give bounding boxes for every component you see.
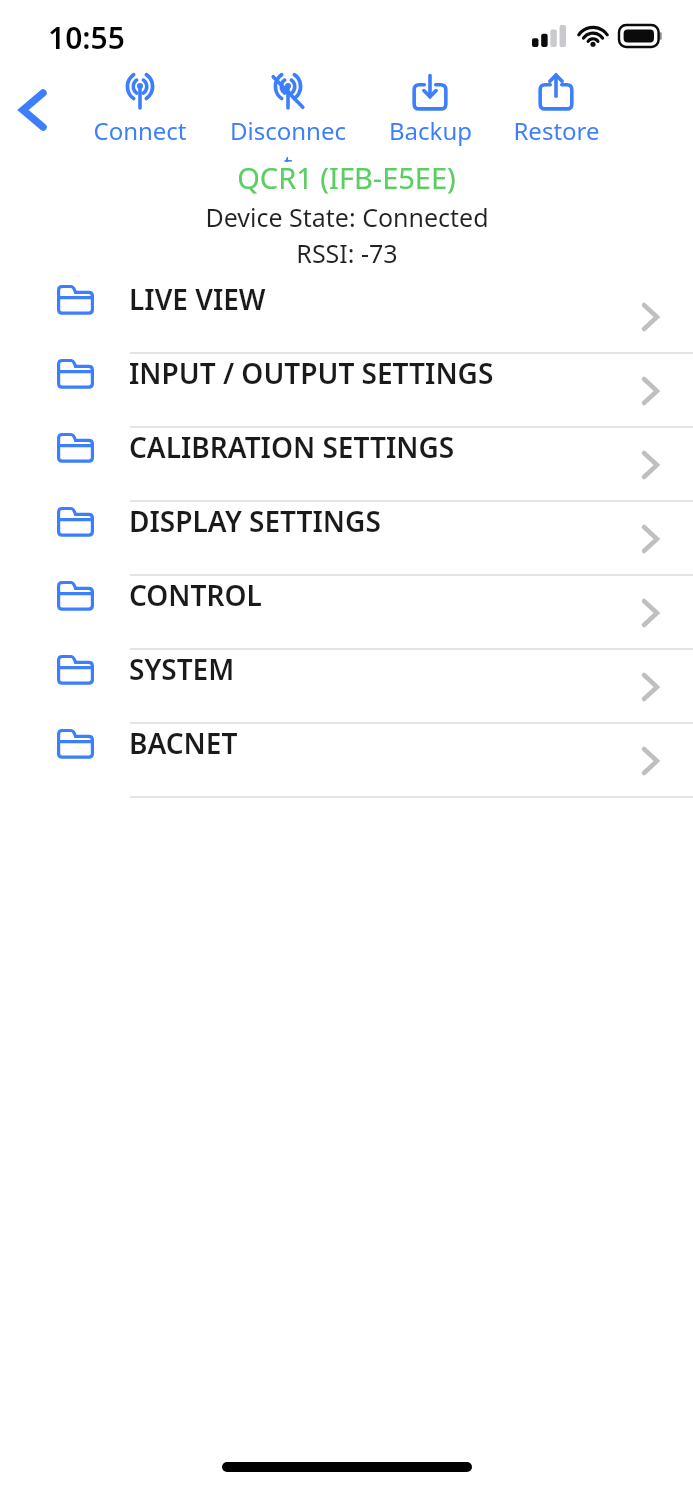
button[interactable]: INPUT / OUTPUT SETTINGS [0, 354, 693, 428]
button[interactable]: Backup [368, 74, 492, 147]
staticText: Connect [93, 114, 187, 147]
staticText: BACNET [129, 724, 238, 762]
staticText: SYSTEM [129, 650, 235, 688]
button[interactable]: Connect [78, 74, 202, 147]
staticText: DISPLAY SETTINGS [129, 502, 381, 540]
staticText: LIVE VIEW [129, 280, 266, 318]
staticText: Restore [513, 114, 600, 147]
button[interactable]: DISPLAY SETTINGS [0, 502, 693, 576]
button[interactable]: CALIBRATION SETTINGS [0, 428, 693, 502]
staticText: 10:55 [48, 17, 125, 58]
staticText: CONTROL [129, 576, 262, 614]
staticText: Disconnect [226, 114, 350, 162]
button[interactable]: CONTROL [0, 576, 693, 650]
button[interactable]: Back [10, 87, 56, 133]
button[interactable]: BACNET [0, 724, 693, 798]
button[interactable]: Restore [494, 74, 618, 147]
button[interactable]: LIVE VIEW [0, 280, 693, 354]
staticText: RSSI: -73 [296, 236, 398, 270]
staticText: CALIBRATION SETTINGS [129, 428, 455, 466]
staticText: Backup [389, 114, 472, 147]
staticText: INPUT / OUTPUT SETTINGS [129, 354, 494, 392]
staticText: QCR1 (IFB-E5EE) [237, 158, 456, 197]
staticText: Device State: Connected [205, 200, 489, 234]
button[interactable]: Disconnect [226, 74, 350, 162]
button[interactable]: SYSTEM [0, 650, 693, 724]
